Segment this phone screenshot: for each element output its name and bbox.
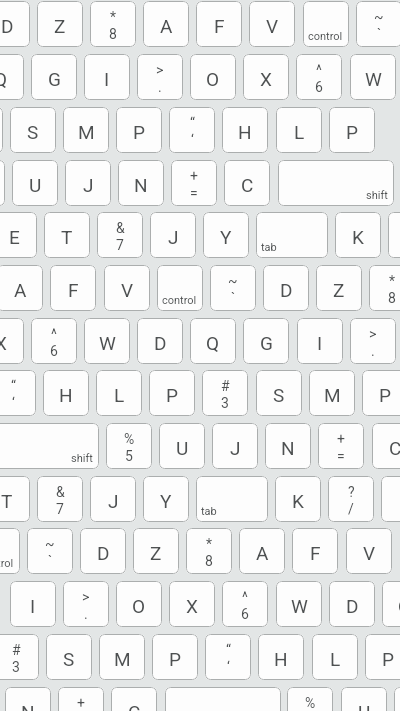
button[interactable]: M — [309, 370, 355, 416]
button[interactable]: U — [159, 423, 205, 469]
button[interactable]: M — [99, 634, 145, 680]
button[interactable]: shift — [0, 423, 99, 469]
button[interactable]: I — [84, 54, 130, 100]
button[interactable]: Q — [0, 54, 24, 100]
button[interactable]: H — [258, 634, 304, 680]
button[interactable]: P — [149, 370, 195, 416]
button[interactable]: A — [0, 265, 43, 311]
button[interactable]: P — [365, 634, 400, 680]
button[interactable]: >. — [137, 54, 183, 100]
button[interactable]: F — [50, 265, 96, 311]
button[interactable]: >. — [63, 581, 109, 627]
button[interactable]: D — [329, 581, 375, 627]
button[interactable]: J — [150, 212, 196, 258]
button[interactable]: V — [104, 265, 150, 311]
button[interactable]: G — [31, 54, 77, 100]
button[interactable]: C — [111, 687, 157, 711]
button[interactable]: tab — [256, 212, 328, 258]
button[interactable]: += — [318, 423, 364, 469]
button[interactable]: #3 — [202, 370, 248, 416]
button[interactable]: Z — [37, 1, 83, 47]
button[interactable]: ^6 — [222, 581, 268, 627]
button[interactable]: #3 — [0, 107, 3, 153]
button[interactable]: I — [297, 318, 343, 364]
button[interactable]: J — [394, 687, 400, 711]
button[interactable]: M — [63, 107, 109, 153]
button[interactable]: S — [10, 107, 56, 153]
button[interactable]: C — [372, 423, 400, 469]
button[interactable]: += — [171, 160, 217, 206]
button[interactable]: *8 — [369, 265, 400, 311]
button[interactable]: S — [46, 634, 92, 680]
button[interactable]: >. — [350, 318, 396, 364]
button[interactable]: N — [265, 423, 311, 469]
button[interactable]: T — [0, 476, 30, 522]
button[interactable]: P — [152, 634, 198, 680]
button[interactable]: ~` — [356, 1, 400, 47]
button[interactable]: control — [303, 1, 349, 47]
button[interactable]: W — [84, 318, 130, 364]
button[interactable]: J — [90, 476, 136, 522]
button[interactable]: %5 — [0, 160, 5, 206]
button[interactable]: N — [118, 160, 164, 206]
button[interactable]: K — [275, 476, 321, 522]
button[interactable]: D — [80, 528, 126, 574]
button[interactable]: N — [5, 687, 51, 711]
button[interactable]: P — [116, 107, 162, 153]
button[interactable]: L — [312, 634, 358, 680]
button[interactable]: D — [137, 318, 183, 364]
button[interactable]: E — [381, 476, 400, 522]
button[interactable]: O — [116, 581, 162, 627]
button[interactable]: Q — [382, 581, 400, 627]
button[interactable]: Y — [143, 476, 189, 522]
button[interactable]: “‘ — [169, 107, 215, 153]
button[interactable]: K — [335, 212, 381, 258]
button[interactable]: D — [0, 1, 30, 47]
button[interactable]: Z — [133, 528, 179, 574]
button[interactable]: C — [224, 160, 270, 206]
button[interactable]: F — [196, 1, 242, 47]
button[interactable]: “‘ — [0, 370, 36, 416]
button[interactable]: D — [263, 265, 309, 311]
button[interactable]: ^6 — [31, 318, 77, 364]
button[interactable]: control — [0, 528, 20, 574]
button[interactable]: I — [10, 581, 56, 627]
button[interactable]: Z — [316, 265, 362, 311]
button[interactable]: &7 — [37, 476, 83, 522]
button[interactable]: X — [0, 318, 24, 364]
button[interactable]: H — [222, 107, 268, 153]
button[interactable]: shift — [278, 160, 394, 206]
button[interactable]: V — [346, 528, 392, 574]
button[interactable]: O — [190, 54, 236, 100]
button[interactable]: *8 — [90, 1, 136, 47]
button[interactable]: V — [249, 1, 295, 47]
button[interactable]: T — [44, 212, 90, 258]
button[interactable]: &7 — [97, 212, 143, 258]
button[interactable]: J — [65, 160, 111, 206]
button[interactable]: U — [12, 160, 58, 206]
button[interactable]: ~` — [210, 265, 256, 311]
button[interactable]: A — [143, 1, 189, 47]
button[interactable]: L — [96, 370, 142, 416]
button[interactable]: ~` — [27, 528, 73, 574]
button[interactable]: += — [58, 687, 104, 711]
button[interactable]: P — [329, 107, 375, 153]
button[interactable]: Y — [203, 212, 249, 258]
button[interactable]: ?/ — [388, 212, 400, 258]
button[interactable]: Q — [190, 318, 236, 364]
button[interactable]: ^6 — [296, 54, 342, 100]
button[interactable]: #3 — [0, 634, 39, 680]
button[interactable]: W — [350, 54, 396, 100]
button[interactable]: X — [169, 581, 215, 627]
button[interactable]: “‘ — [205, 634, 251, 680]
button[interactable]: %5 — [106, 423, 152, 469]
button[interactable]: *8 — [186, 528, 232, 574]
button[interactable]: S — [256, 370, 302, 416]
button[interactable]: X — [243, 54, 289, 100]
button[interactable]: tab — [196, 476, 268, 522]
button[interactable]: shift — [165, 687, 281, 711]
button[interactable]: P — [362, 370, 400, 416]
button[interactable]: L — [276, 107, 322, 153]
button[interactable]: E — [0, 212, 37, 258]
button[interactable]: ?/ — [328, 476, 374, 522]
